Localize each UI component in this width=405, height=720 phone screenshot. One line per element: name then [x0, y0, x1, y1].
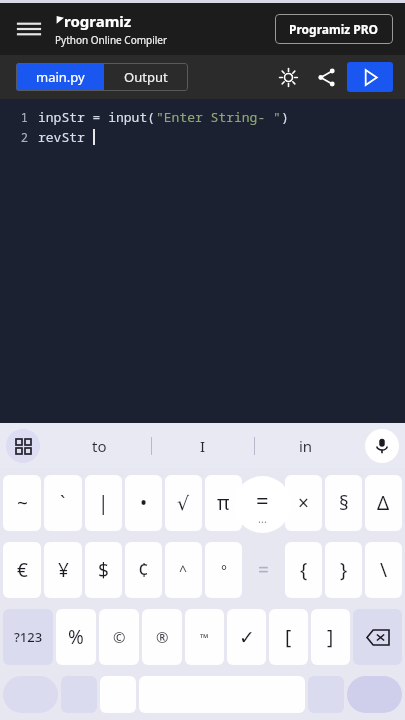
staticText: √ [177, 492, 190, 514]
staticText: ?123 [14, 628, 43, 646]
button[interactable]: = [245, 475, 282, 531]
staticText: Output [124, 68, 168, 86]
staticText: | [98, 490, 109, 516]
staticText: 2 [20, 129, 28, 145]
staticText: ° [221, 561, 227, 580]
button[interactable]: \ [365, 542, 402, 598]
button[interactable]: ✓ [227, 609, 266, 665]
staticText: 1 [20, 109, 28, 125]
button[interactable]: [ [269, 609, 308, 665]
staticText: € [17, 557, 28, 583]
staticText: = [256, 485, 269, 515]
staticText: revStr [38, 128, 93, 146]
staticText: % [68, 624, 84, 650]
button[interactable]: Menu [10, 10, 48, 48]
button[interactable]: = [245, 542, 282, 598]
staticText: ✓ [239, 626, 255, 648]
button[interactable]: ~ [3, 475, 41, 531]
staticText: } [340, 557, 348, 583]
button[interactable]: Share [309, 60, 343, 94]
button[interactable]: ¢ [125, 542, 162, 598]
button[interactable]: § [325, 475, 362, 531]
staticText: × [298, 490, 309, 516]
button[interactable]: • [125, 475, 162, 531]
button[interactable]: ] [311, 609, 350, 665]
button[interactable]: % [56, 609, 96, 665]
staticText: ^ [179, 561, 188, 580]
staticText: to [92, 436, 107, 456]
staticText: ¢ [138, 557, 149, 583]
button[interactable]: ` [44, 475, 82, 531]
button[interactable]: ?123 [3, 609, 53, 665]
button[interactable]: | [85, 475, 122, 531]
staticText: © [113, 627, 126, 647]
button[interactable] [100, 676, 136, 713]
button[interactable]: $ [85, 542, 122, 598]
staticText: ... [258, 511, 267, 526]
staticText: = [258, 490, 269, 516]
staticText: { [300, 557, 308, 583]
staticText: Programiz PRO [289, 21, 379, 37]
button[interactable]: ^ [165, 542, 202, 598]
button[interactable]: Programiz PRO [275, 14, 393, 44]
staticText: = [258, 557, 269, 583]
staticText: Python Online Compiler [55, 33, 168, 47]
button[interactable]: Voice input [365, 429, 399, 463]
button[interactable]: © [99, 609, 139, 665]
staticText: ] [327, 624, 334, 650]
button[interactable]: Δ [365, 475, 402, 531]
staticText: main.py [36, 68, 85, 86]
staticText: π [217, 490, 230, 516]
button[interactable]: Theme [271, 60, 305, 94]
button[interactable]: √ [165, 475, 202, 531]
button[interactable]: 1 [0, 99, 405, 423]
button[interactable]: Toolbar [6, 429, 40, 463]
button[interactable]: ™ [185, 609, 224, 665]
button[interactable]: in [255, 423, 357, 468]
button[interactable]: ® [142, 609, 182, 665]
staticText: in [299, 436, 313, 456]
button[interactable]: × [285, 475, 322, 531]
button[interactable]: ° [205, 542, 242, 598]
button[interactable]: ¥ [44, 542, 82, 598]
button[interactable]: I [152, 423, 254, 468]
button[interactable]: } [325, 542, 362, 598]
staticText: inpStr = input( [38, 108, 156, 126]
button[interactable]: Language [3, 676, 58, 713]
staticText: rogramiz [64, 11, 132, 31]
staticText: \ [380, 557, 388, 583]
button[interactable]: Output [104, 63, 188, 91]
button[interactable]: main.py [16, 63, 104, 91]
staticText: ™ [200, 630, 209, 645]
staticText: "Enter String- " [156, 108, 281, 126]
button[interactable]: € [3, 542, 41, 598]
staticText: ® [156, 627, 169, 647]
staticText: ` [60, 490, 66, 516]
staticText: § [339, 490, 349, 516]
staticText: Δ [377, 490, 390, 516]
button[interactable]: { [285, 542, 322, 598]
staticText: • [140, 490, 148, 516]
staticText: [ [285, 624, 292, 650]
staticText: I [200, 436, 206, 456]
button[interactable]: Run [347, 62, 393, 92]
staticText: $ [98, 557, 109, 583]
staticText: ) [281, 108, 289, 126]
staticText: ~ [17, 490, 28, 516]
staticText: ¥ [58, 557, 69, 583]
button[interactable]: to [48, 423, 151, 468]
button[interactable]: Enter [347, 676, 402, 713]
button[interactable]: Backspace [353, 609, 402, 665]
button[interactable]: π [205, 475, 242, 531]
